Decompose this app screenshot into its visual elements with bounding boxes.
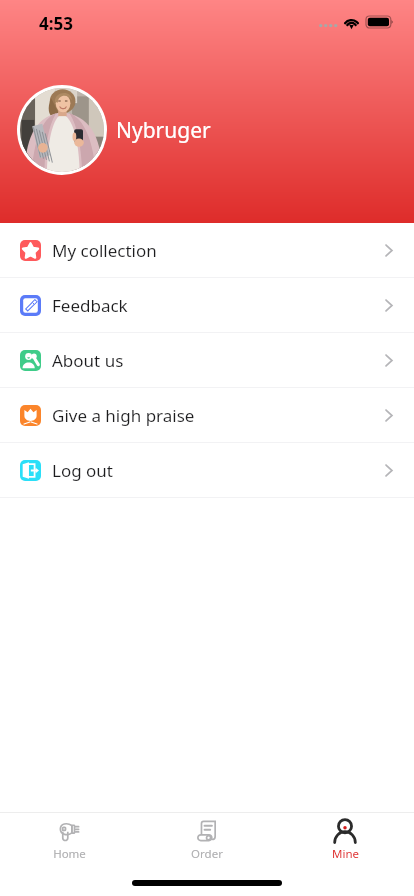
staticText: Order xyxy=(191,846,223,862)
staticText: My collection xyxy=(52,239,157,262)
staticText: Nybruger xyxy=(116,116,211,145)
staticText: Home xyxy=(53,846,86,862)
button[interactable]: About us xyxy=(0,333,414,387)
button[interactable]: Order xyxy=(138,813,276,863)
button[interactable]: Home xyxy=(0,813,138,863)
button[interactable]: Profile photo xyxy=(20,88,104,172)
button[interactable]: Mine xyxy=(276,813,414,863)
button[interactable]: Give a high praise xyxy=(0,388,414,442)
staticText: About us xyxy=(52,349,124,372)
button[interactable]: My collection xyxy=(0,223,414,277)
staticText: 4:53 xyxy=(39,12,73,35)
staticText: Log out xyxy=(52,459,113,482)
button[interactable]: Log out xyxy=(0,443,414,497)
staticText: Give a high praise xyxy=(52,404,195,427)
button[interactable]: Feedback xyxy=(0,278,414,332)
staticText: Mine xyxy=(332,846,359,862)
staticText: Feedback xyxy=(52,294,128,317)
